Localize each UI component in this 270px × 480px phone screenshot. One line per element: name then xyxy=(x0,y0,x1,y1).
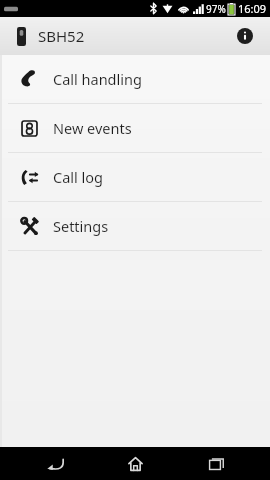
staticText: 16:09 xyxy=(238,1,267,16)
button[interactable]: Settings xyxy=(0,202,270,250)
staticText: New events xyxy=(53,118,132,138)
staticText: SBH52 xyxy=(38,26,85,46)
button[interactable]: Recent apps xyxy=(190,447,242,480)
button[interactable]: Information xyxy=(230,21,260,51)
button[interactable]: Home xyxy=(109,447,161,480)
button[interactable]: Back xyxy=(29,447,81,480)
button[interactable]: Call log xyxy=(0,153,270,201)
button[interactable]: New events xyxy=(0,104,270,152)
staticText: Call handling xyxy=(53,69,142,89)
staticText: Call log xyxy=(53,167,103,187)
button[interactable]: Call handling xyxy=(0,55,270,103)
staticText: 97% xyxy=(206,2,226,16)
staticText: Settings xyxy=(53,216,109,236)
